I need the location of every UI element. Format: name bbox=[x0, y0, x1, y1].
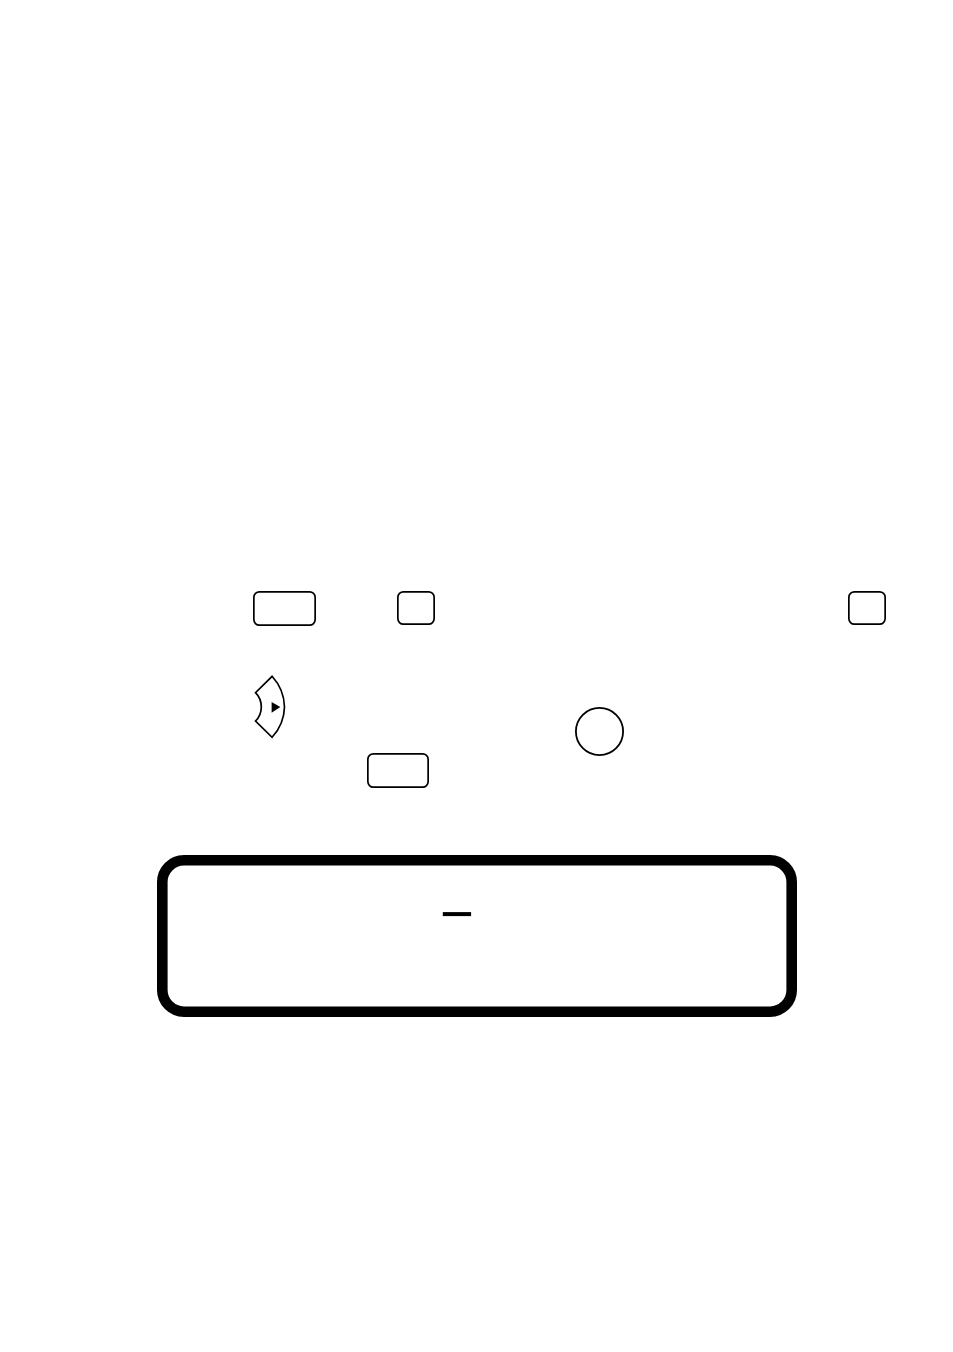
button[interactable] bbox=[157, 855, 797, 1017]
button[interactable]: Search bbox=[397, 591, 435, 625]
button[interactable]: Open navigation menu bbox=[253, 591, 316, 626]
button[interactable]: Profile bbox=[575, 707, 624, 756]
button[interactable]: More options bbox=[848, 591, 886, 625]
button[interactable]: Play bbox=[254, 675, 287, 739]
button[interactable]: Filter bbox=[367, 753, 429, 788]
